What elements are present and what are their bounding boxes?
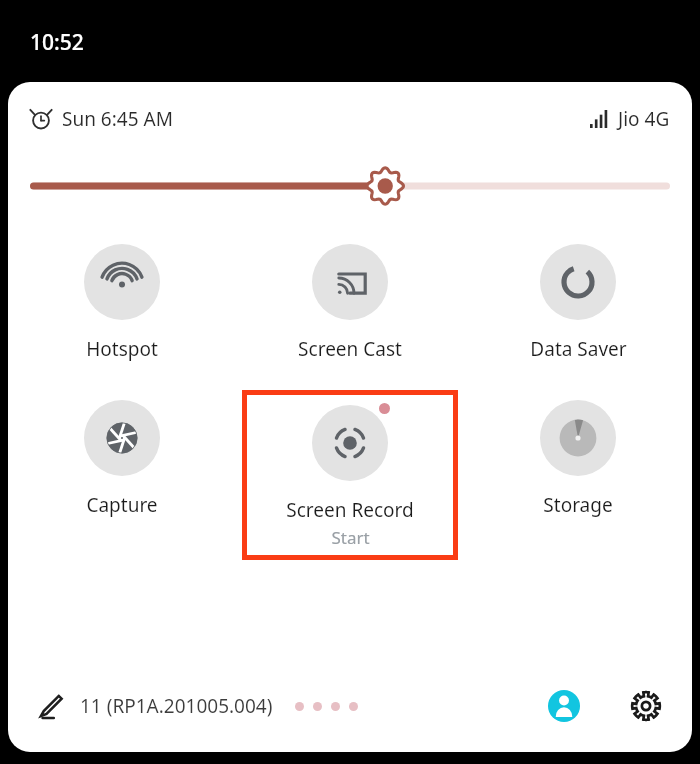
button[interactable]: Jio 4G bbox=[590, 106, 670, 132]
button[interactable]: Data Saver bbox=[464, 234, 692, 368]
staticText: 11 (RP1A.201005.004) bbox=[80, 693, 273, 719]
button[interactable]: Storage bbox=[464, 390, 692, 524]
staticText: Storage bbox=[543, 492, 613, 518]
button[interactable]: Settings bbox=[626, 686, 666, 726]
staticText: Hotspot bbox=[86, 336, 158, 362]
staticText: Start bbox=[331, 526, 370, 549]
staticText: Screen Cast bbox=[298, 336, 402, 362]
staticText: Sun 6:45 AM bbox=[62, 106, 173, 132]
staticText: Screen Record bbox=[286, 497, 414, 523]
button[interactable]: Hotspot bbox=[8, 234, 236, 368]
staticText: Jio 4G bbox=[618, 106, 670, 132]
button[interactable]: Screen Cast bbox=[236, 234, 464, 368]
button[interactable]: Sun 6:45 AM bbox=[30, 106, 173, 132]
button[interactable]: Screen Record bbox=[247, 395, 453, 555]
staticText: Capture bbox=[86, 492, 158, 518]
staticText: 10:52 bbox=[30, 28, 84, 57]
button[interactable] bbox=[30, 164, 670, 208]
staticText: Data Saver bbox=[530, 336, 627, 362]
button[interactable]: Edit bbox=[34, 689, 68, 723]
button[interactable]: User account bbox=[544, 686, 584, 726]
button[interactable]: Capture bbox=[8, 390, 236, 524]
